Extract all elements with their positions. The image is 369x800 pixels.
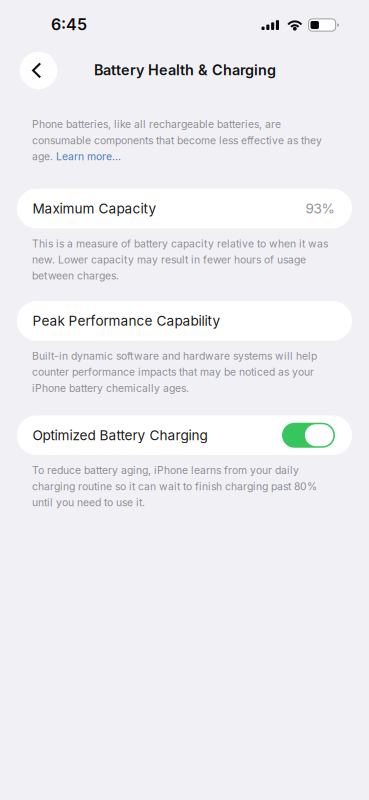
staticText: Optimized Battery Charging: [32, 427, 207, 443]
staticText: Maximum Capacity: [32, 200, 156, 217]
button[interactable]: Learn more…: [56, 150, 121, 163]
staticText: consumable components that become less e…: [32, 134, 322, 147]
staticText: age.: [32, 150, 56, 163]
staticText: Built-in dynamic software and hardware s…: [32, 350, 317, 362]
staticText: Battery Health & Charging: [94, 61, 276, 79]
staticText: Peak Performance Capability: [32, 313, 220, 329]
staticText: Phone batteries, like all rechargeable b…: [32, 118, 281, 131]
staticText: charging routine so it can wait to finis…: [32, 480, 317, 493]
button[interactable]: Back: [20, 52, 57, 89]
staticText: To reduce battery aging, iPhone learns f…: [32, 464, 299, 477]
staticText: counter performance impacts that may be …: [32, 366, 314, 378]
staticText: between charges.: [32, 269, 119, 282]
staticText: until you need to use it.: [32, 496, 145, 509]
staticText: new. Lower capacity may result in fewer …: [32, 253, 306, 266]
staticText: 6:45: [51, 15, 87, 34]
button[interactable]: Peak Performance Capability: [17, 301, 352, 341]
staticText: iPhone battery chemically ages.: [32, 382, 189, 394]
staticText: This is a measure of battery capacity re…: [32, 237, 328, 250]
staticText: Learn more…: [56, 150, 121, 163]
button[interactable]: Maximum Capacity: [17, 189, 352, 228]
staticText: 93%: [305, 200, 334, 217]
button[interactable]: Optimized Battery Charging: [17, 415, 352, 455]
